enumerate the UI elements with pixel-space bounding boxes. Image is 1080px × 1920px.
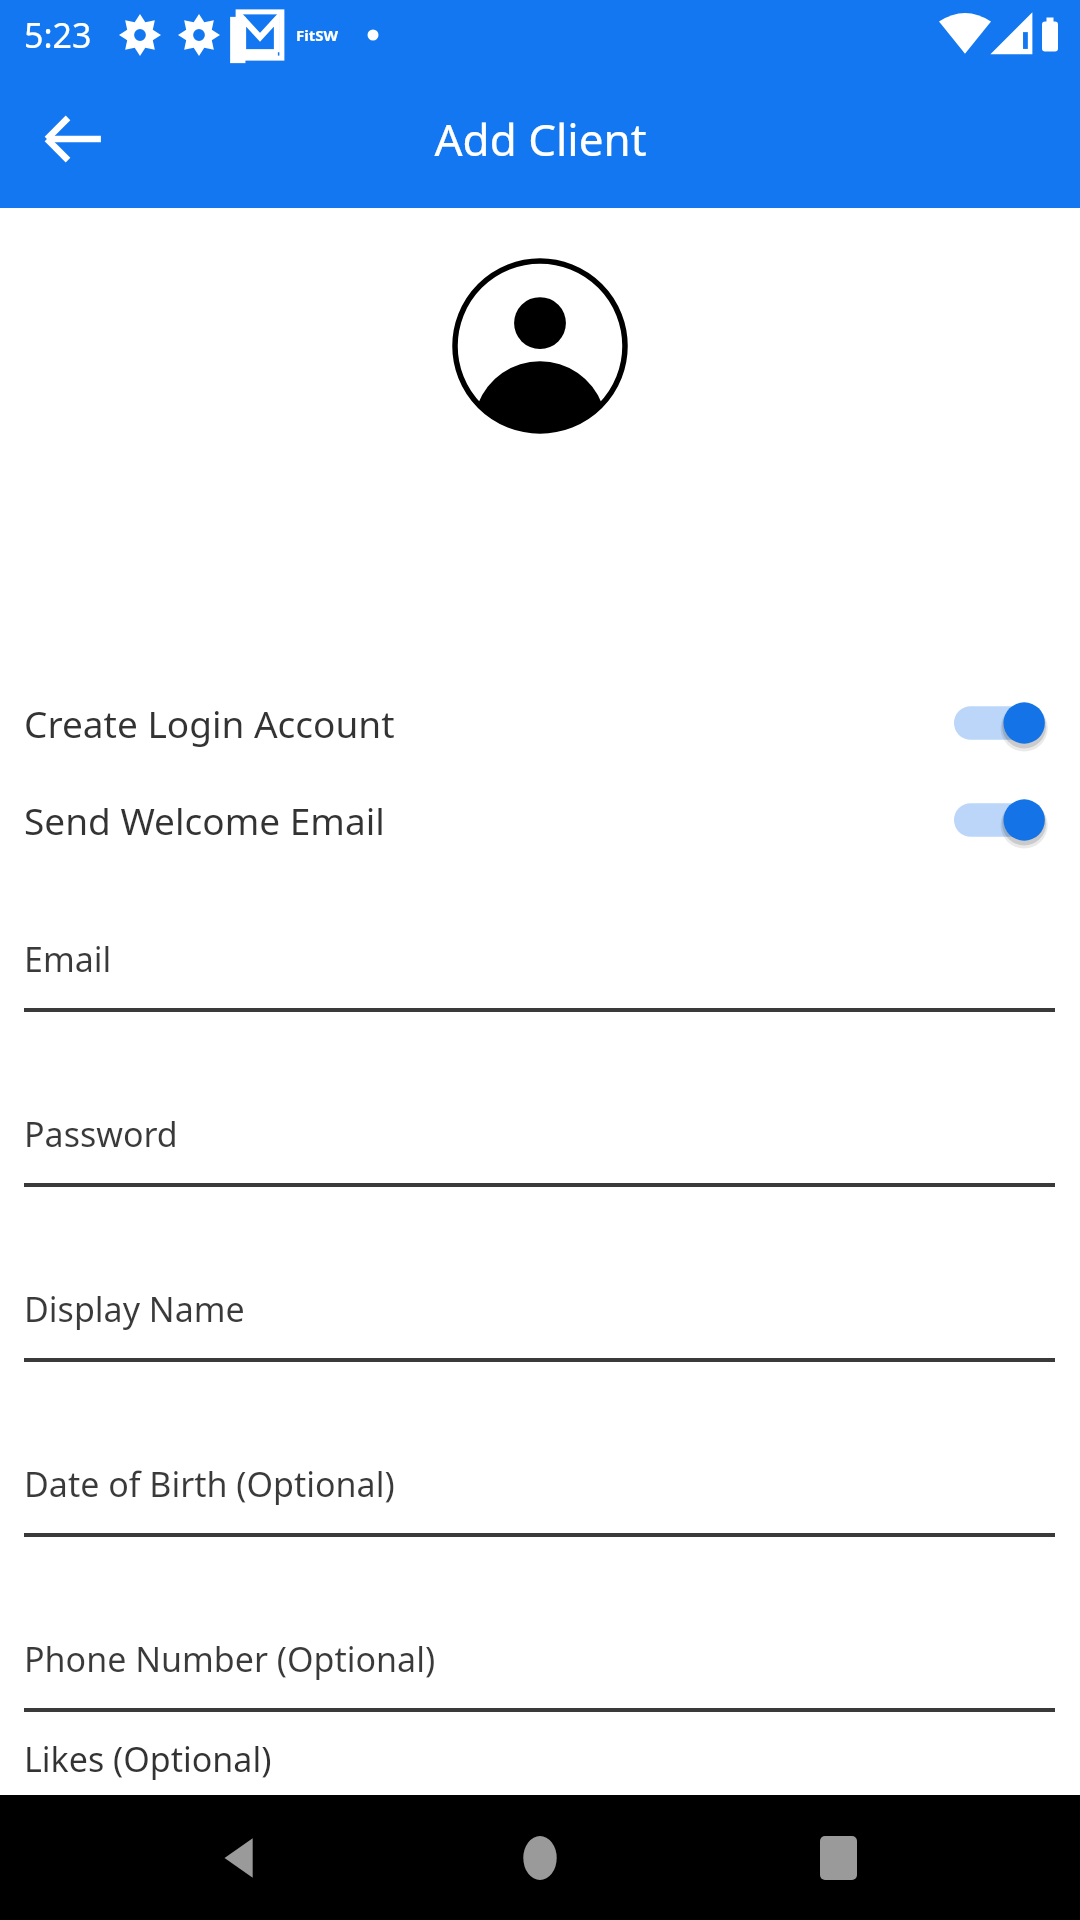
button[interactable]: Recent apps (783, 1803, 893, 1913)
staticText: FitSW (296, 25, 339, 45)
button[interactable]: Send Welcome Email (0, 775, 1080, 865)
button[interactable]: Date of Birth (Optional) (0, 1433, 1080, 1573)
staticText: Goals (Optional) (24, 1809, 281, 1855)
staticText: Display Name (24, 1286, 245, 1332)
staticText: Likes (Optional) (24, 1736, 272, 1782)
button[interactable]: Likes (Optional) (24, 1736, 272, 1796)
button[interactable]: Create Login Account (0, 678, 1080, 768)
staticText: Create Login Account (24, 698, 954, 748)
button[interactable]: Phone Number (Optional) (0, 1608, 1080, 1748)
button[interactable]: Email (0, 908, 1080, 1048)
button[interactable]: Display Name (0, 1258, 1080, 1398)
staticText: Send Welcome Email (24, 795, 954, 845)
staticText: Add Client (434, 109, 647, 169)
button[interactable]: Goals (Optional) (0, 1781, 1080, 1920)
button[interactable]: Home (485, 1803, 595, 1913)
staticText: Password (24, 1111, 178, 1157)
staticText: Phone Number (Optional) (24, 1636, 436, 1682)
staticText: Date of Birth (Optional) (24, 1461, 395, 1507)
button[interactable]: Back (188, 1803, 298, 1913)
staticText: 5:23 (24, 12, 92, 58)
button[interactable]: Back (18, 84, 128, 194)
staticText: Email (24, 936, 112, 982)
button[interactable]: Password (0, 1083, 1080, 1223)
